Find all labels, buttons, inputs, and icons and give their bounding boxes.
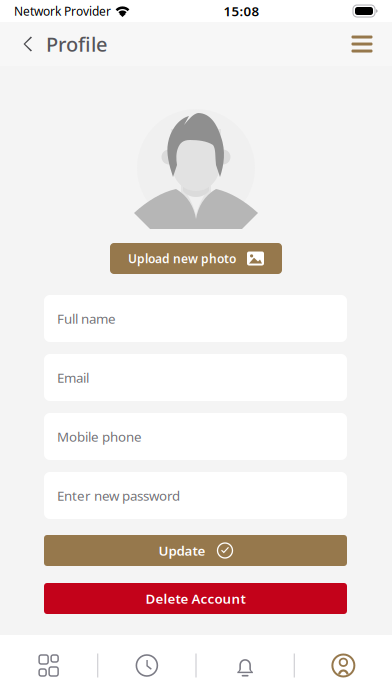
button[interactable]: Upload new photo — [110, 243, 282, 274]
button[interactable]: Delete Account — [44, 583, 347, 614]
staticText: 15:08 — [223, 2, 259, 20]
staticText: Email — [57, 369, 89, 386]
staticText: Network Provider — [14, 3, 111, 19]
staticText: Upload new photo — [128, 250, 236, 266]
staticText: Full name — [57, 310, 116, 327]
staticText: Delete Account — [145, 590, 245, 607]
button[interactable]: History — [98, 642, 195, 688]
staticText: Update — [158, 542, 205, 559]
button[interactable]: Dashboard — [0, 642, 97, 688]
button[interactable]: Back — [10, 22, 46, 66]
button[interactable]: Update — [44, 535, 347, 566]
button[interactable]: Profile — [295, 642, 392, 688]
button[interactable]: Menu — [340, 22, 384, 66]
staticText: Enter new password — [57, 487, 180, 504]
staticText: Profile — [46, 31, 107, 57]
staticText: Mobile phone — [57, 428, 142, 445]
button[interactable]: Notifications — [196, 642, 294, 688]
